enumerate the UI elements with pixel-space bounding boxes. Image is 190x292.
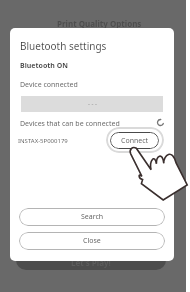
staticText: Close [83, 236, 101, 246]
staticText: Connect [121, 136, 149, 146]
button[interactable]: Let's Play! [16, 246, 166, 270]
button[interactable]: Searching [156, 118, 165, 127]
staticText: INSTAX-5P000179 [18, 137, 68, 145]
button[interactable]: Search [19, 208, 165, 226]
staticText: Bluetooth ON [20, 61, 68, 71]
staticText: Print Quality Options [57, 18, 142, 29]
button[interactable]: Connect [110, 132, 159, 149]
staticText: Bluetooth settings [20, 39, 107, 53]
button[interactable]: Close [19, 232, 165, 250]
staticText: Device connected [20, 80, 78, 90]
staticText: Let's Play! [71, 257, 111, 268]
staticText: Search [81, 212, 104, 222]
staticText: Devices that can be connected [20, 119, 120, 129]
staticText: - - - [88, 100, 97, 108]
